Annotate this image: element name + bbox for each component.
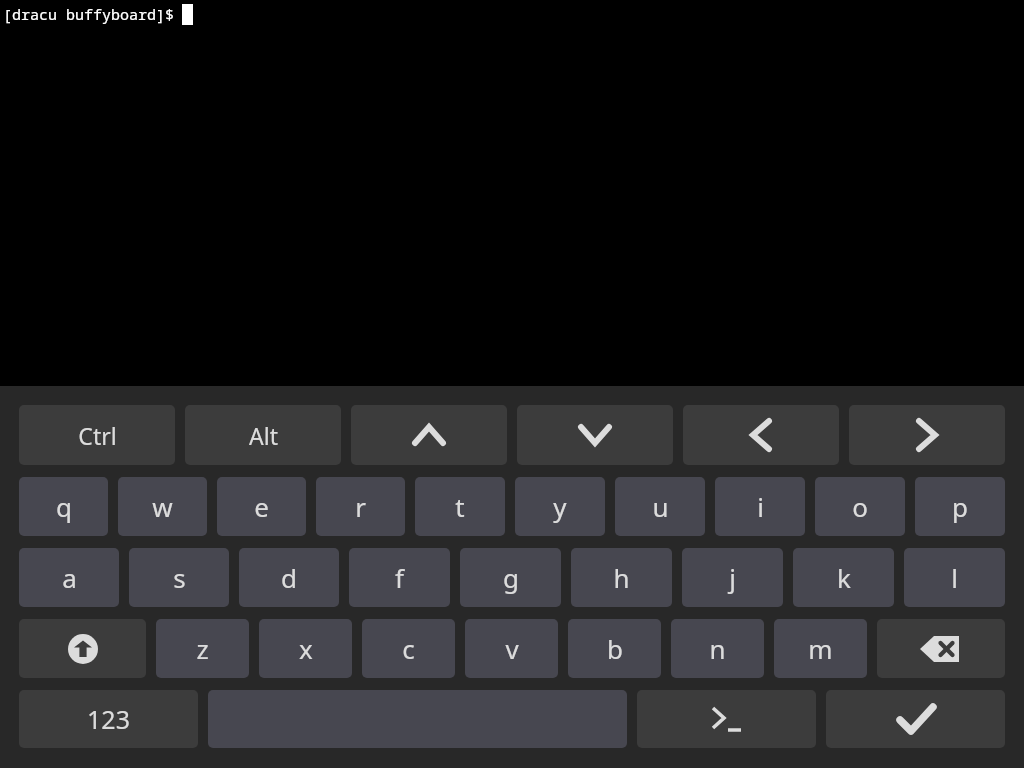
button[interactable]: x <box>259 619 352 678</box>
button[interactable]: Arrow down <box>517 405 673 465</box>
staticText: k <box>837 560 851 595</box>
button[interactable]: w <box>118 477 207 536</box>
button[interactable]: e <box>217 477 306 536</box>
button[interactable]: n <box>671 619 764 678</box>
staticText: v <box>505 631 519 666</box>
staticText: o <box>852 489 868 524</box>
staticText: r <box>355 489 366 524</box>
button[interactable]: Alt <box>185 405 341 465</box>
button[interactable]: k <box>793 548 894 607</box>
button[interactable]: f <box>349 548 450 607</box>
staticText: s <box>173 560 186 595</box>
button[interactable]: d <box>239 548 339 607</box>
button[interactable]: s <box>129 548 229 607</box>
button[interactable]: a <box>19 548 119 607</box>
staticText: m <box>808 631 833 666</box>
staticText: e <box>254 489 269 524</box>
staticText: h <box>613 560 630 595</box>
staticText: y <box>553 489 567 524</box>
button[interactable]: h <box>571 548 672 607</box>
button[interactable]: v <box>465 619 558 678</box>
button[interactable]: Arrow left <box>683 405 839 465</box>
staticText: b <box>607 631 623 666</box>
staticText: n <box>709 631 726 666</box>
button[interactable]: Shift <box>19 619 146 678</box>
button[interactable]: r <box>316 477 405 536</box>
button[interactable]: o <box>815 477 905 536</box>
staticText: l <box>951 560 958 595</box>
button[interactable]: z <box>156 619 249 678</box>
button[interactable]: i <box>715 477 805 536</box>
button[interactable]: t <box>415 477 505 536</box>
staticText: d <box>281 560 297 595</box>
button[interactable]: y <box>515 477 605 536</box>
button[interactable]: b <box>568 619 661 678</box>
button[interactable]: c <box>362 619 455 678</box>
button[interactable]: Backspace <box>877 619 1005 678</box>
staticText: q <box>56 489 72 524</box>
staticText: w <box>152 489 173 524</box>
button[interactable]: Arrow right <box>849 405 1005 465</box>
staticText: Ctrl <box>78 420 117 451</box>
staticText: j <box>729 560 736 595</box>
staticText: [dracu buffyboard]$ <box>3 4 175 24</box>
staticText: f <box>395 560 404 595</box>
staticText: g <box>503 560 519 595</box>
button[interactable]: u <box>615 477 705 536</box>
staticText: 123 <box>87 702 130 736</box>
button[interactable]: Enter <box>826 690 1005 748</box>
staticText: z <box>196 631 209 666</box>
button[interactable]: 123 <box>19 690 198 748</box>
button[interactable]: Arrow up <box>351 405 507 465</box>
button[interactable]: j <box>682 548 783 607</box>
button[interactable]: q <box>19 477 108 536</box>
staticText: a <box>62 560 77 595</box>
staticText: c <box>402 631 415 666</box>
staticText: x <box>299 631 313 666</box>
staticText: Alt <box>249 420 278 451</box>
button[interactable]: p <box>915 477 1005 536</box>
button[interactable]: m <box>774 619 867 678</box>
button[interactable]: l <box>904 548 1005 607</box>
staticText: i <box>757 489 764 524</box>
staticText: p <box>952 489 968 524</box>
staticText: u <box>652 489 669 524</box>
staticText: t <box>455 489 465 524</box>
button[interactable]: Ctrl <box>19 405 175 465</box>
button[interactable]: g <box>460 548 561 607</box>
button[interactable]: Terminal <box>637 690 816 748</box>
